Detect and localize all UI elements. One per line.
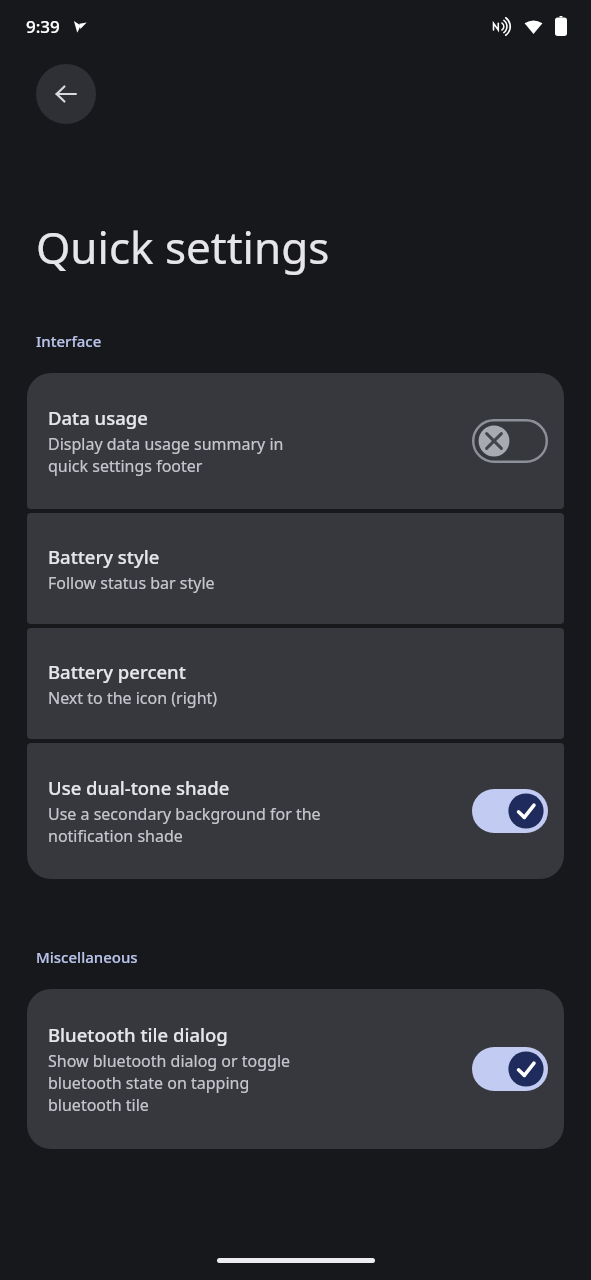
button[interactable]: Bluetooth tile dialog [27,989,564,1149]
staticText: Battery style [48,544,160,569]
button[interactable]: Toggle on [472,789,548,833]
staticText: Bluetooth tile dialog [48,1022,228,1047]
staticText: 9:39 [26,15,60,38]
staticText: Battery percent [48,659,186,684]
button[interactable]: Battery style [27,513,564,624]
button[interactable]: Toggle off [472,419,548,463]
button[interactable]: Data usage [27,373,564,509]
staticText: Miscellaneous [36,947,138,967]
staticText: Display data usage summary in quick sett… [48,433,284,477]
staticText: Quick settings [36,217,330,277]
staticText: Interface [36,331,102,351]
staticText: Next to the icon (right) [48,687,218,709]
button[interactable]: Battery percent [27,628,564,739]
staticText: Show bluetooth dialog or toggle bluetoot… [48,1050,291,1116]
staticText: Data usage [48,405,148,430]
button[interactable]: Use dual-tone shade [27,743,564,879]
staticText: Use a secondary background for the notif… [48,803,321,847]
button[interactable]: Toggle on [472,1047,548,1091]
staticText: Use dual-tone shade [48,775,230,800]
staticText: Follow status bar style [48,572,215,594]
button[interactable]: Back [36,64,96,124]
